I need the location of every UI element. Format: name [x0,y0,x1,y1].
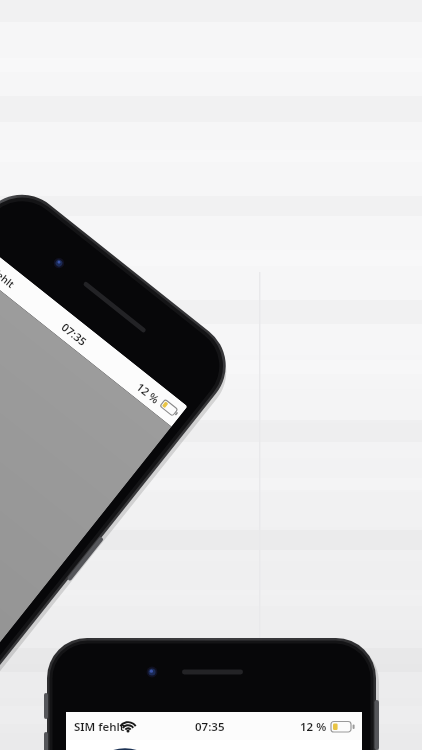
button[interactable]: App preview showing two iPhone devices [0,0,422,750]
